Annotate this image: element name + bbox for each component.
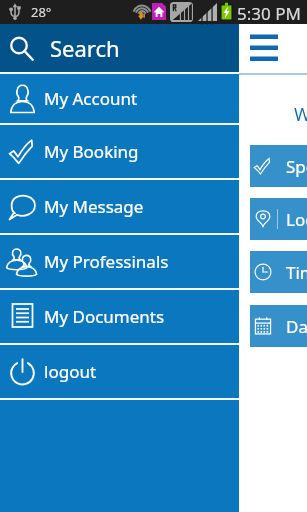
staticText: My Documents bbox=[44, 305, 165, 328]
button[interactable]: My Documents bbox=[0, 290, 239, 343]
button[interactable]: Open navigation menu bbox=[244, 30, 284, 66]
staticText: Location bbox=[286, 208, 307, 231]
staticText: logout bbox=[44, 360, 97, 383]
staticText: Time bbox=[286, 261, 307, 284]
staticText: 28° bbox=[31, 3, 52, 21]
button[interactable]: logout bbox=[0, 345, 239, 398]
staticText: Search bbox=[50, 33, 120, 63]
staticText: My Message bbox=[44, 195, 144, 218]
button[interactable]: My Account bbox=[0, 74, 239, 123]
button[interactable]: My Message bbox=[0, 180, 239, 233]
staticText: My Booking bbox=[44, 140, 139, 163]
button[interactable]: My Booking bbox=[0, 125, 239, 178]
button[interactable]: My Professinals bbox=[0, 235, 239, 288]
button[interactable]: Search bbox=[0, 24, 239, 72]
staticText: Speciality bbox=[286, 155, 307, 178]
button[interactable]: Location bbox=[250, 198, 307, 240]
staticText: Date bbox=[286, 315, 307, 338]
staticText: Welcome bbox=[294, 102, 307, 127]
button[interactable]: Speciality bbox=[250, 145, 307, 187]
button[interactable]: Time bbox=[250, 251, 307, 293]
staticText: My Professinals bbox=[44, 250, 169, 273]
staticText: 5:30 PM bbox=[237, 2, 301, 25]
button[interactable]: Date bbox=[250, 305, 307, 347]
staticText: My Account bbox=[44, 87, 138, 110]
